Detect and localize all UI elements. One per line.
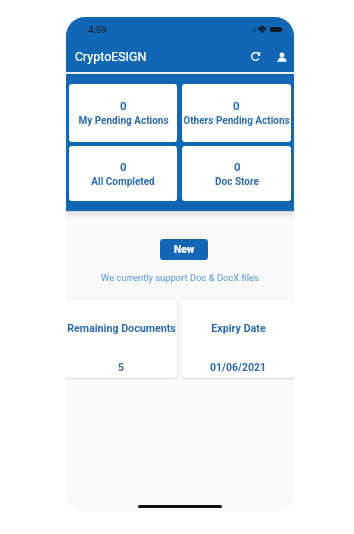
staticText: Doc Store: [215, 176, 259, 188]
button[interactable]: New: [160, 239, 208, 260]
staticText: CryptoESIGN: [75, 49, 147, 64]
button[interactable]: Account: [271, 46, 292, 67]
button[interactable]: 0: [69, 84, 177, 142]
button[interactable]: Remaining Documents: [66, 300, 177, 378]
staticText: Expiry Date: [211, 322, 266, 335]
button[interactable]: 0: [182, 146, 291, 201]
button[interactable]: Refresh: [245, 46, 266, 67]
button[interactable]: 0: [182, 84, 291, 142]
staticText: 01/06/2021: [210, 361, 266, 373]
staticText: We currently support Doc & DocX files: [66, 272, 294, 283]
staticText: 0: [120, 99, 127, 112]
button[interactable]: 0: [69, 146, 177, 201]
staticText: 0: [233, 99, 240, 112]
staticText: All Completed: [91, 176, 155, 188]
staticText: My Pending Actions: [78, 115, 169, 127]
staticText: New: [174, 244, 195, 256]
staticText: 4:59: [88, 24, 107, 35]
button[interactable]: Expiry Date: [182, 300, 294, 378]
staticText: Others Pending Actions: [183, 115, 290, 127]
staticText: Remaining Documents: [67, 322, 176, 335]
staticText: 0: [120, 160, 127, 173]
staticText: 5: [118, 361, 125, 373]
staticText: 0: [234, 160, 241, 173]
